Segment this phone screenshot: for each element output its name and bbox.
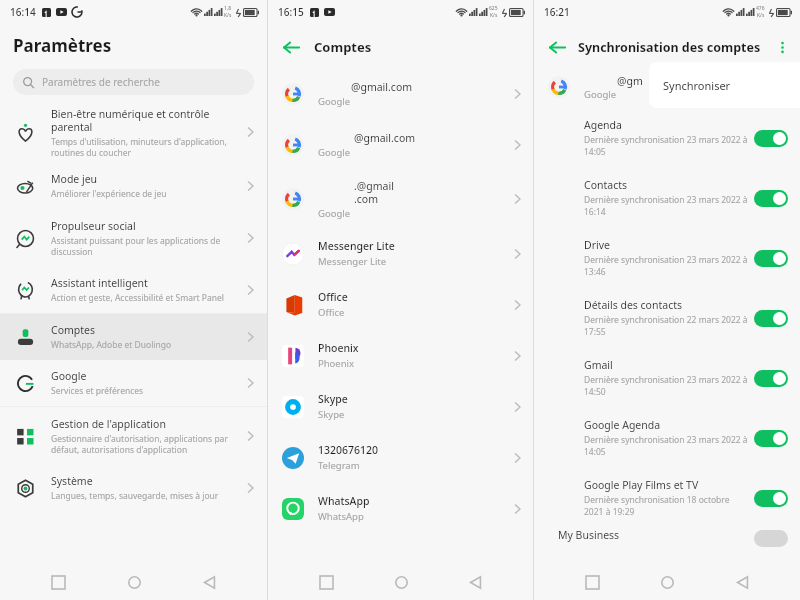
button[interactable]: Home	[650, 565, 684, 599]
staticText: Google Play Films et TV	[584, 478, 699, 492]
staticText: .@gmail .com	[354, 179, 394, 206]
button[interactable]: Back	[542, 32, 572, 62]
button[interactable]: 1320676120	[268, 432, 533, 483]
button[interactable]: Comptes	[0, 314, 267, 360]
staticText: WhatsApp	[318, 494, 370, 508]
button[interactable]: Home	[384, 565, 418, 599]
staticText: Services et préférences	[51, 385, 144, 397]
staticText: 16:14	[584, 206, 606, 218]
staticText: 17:55	[584, 326, 606, 338]
staticText: K/s	[490, 12, 498, 19]
staticText: 1320676120	[318, 443, 379, 457]
staticText: Agenda	[584, 118, 622, 132]
staticText: 16:21	[544, 5, 570, 19]
staticText: Skype	[318, 408, 345, 421]
button[interactable]: Back	[276, 32, 306, 62]
button[interactable]: Bien-être numérique et contrôle parental	[0, 101, 267, 163]
button[interactable]: .@gmail .com	[268, 170, 533, 228]
button[interactable]: Back	[725, 565, 759, 599]
button[interactable]: Système	[0, 465, 267, 511]
staticText: K/s	[224, 12, 232, 19]
button[interactable]: Messenger Lite	[268, 228, 533, 279]
staticText: 14:05	[584, 146, 606, 158]
button[interactable]: Gestion de l'application	[0, 407, 267, 465]
button[interactable]: @gmail.com	[268, 119, 533, 170]
button[interactable]: Paramètres de recherche	[13, 69, 254, 95]
button[interactable]: Back	[458, 565, 492, 599]
staticText: Assistant puissant pour les applications…	[51, 235, 221, 257]
staticText: Bien-être numérique et contrôle parental	[51, 107, 210, 134]
button[interactable]: Recents	[41, 565, 75, 599]
staticText: Synchroniser	[663, 78, 731, 93]
button[interactable]: Google Agenda	[534, 408, 800, 468]
staticText: Comptes	[51, 323, 96, 337]
button[interactable]	[754, 190, 788, 207]
staticText: Dernière synchronisation 22 mars 2022 à	[584, 314, 748, 326]
staticText: Assistant intelligent	[51, 276, 148, 290]
button[interactable]: Détails des contacts	[534, 288, 800, 348]
button[interactable]	[754, 310, 788, 327]
staticText: 16:15	[278, 5, 304, 19]
button[interactable]: Synchroniser	[649, 62, 800, 108]
staticText: Système	[51, 474, 93, 488]
button[interactable]	[754, 490, 788, 507]
button[interactable]	[754, 250, 788, 267]
button[interactable]: More options	[770, 35, 794, 59]
button[interactable]: Assistant intelligent	[0, 267, 267, 313]
button[interactable]: Mode jeu	[0, 163, 267, 209]
staticText: @gm	[617, 74, 643, 88]
button[interactable]: Recents	[309, 565, 343, 599]
staticText: WhatsApp, Adobe et Duolingo	[51, 339, 172, 351]
staticText: Améliorer l'expérience de jeu	[51, 188, 167, 200]
staticText: Gmail	[584, 358, 613, 372]
staticText: Comptes	[314, 38, 372, 56]
button[interactable]	[754, 430, 788, 447]
button[interactable]: Contacts	[534, 168, 800, 228]
button[interactable]: Skype	[268, 381, 533, 432]
staticText: Skype	[318, 392, 348, 406]
staticText: Gestionnaire d'autorisation, application…	[51, 433, 228, 455]
staticText: WhatsApp	[318, 510, 364, 523]
staticText: 14:05	[584, 446, 606, 458]
staticText: 13:46	[584, 266, 606, 278]
staticText: 2021 à 19:29	[584, 506, 635, 518]
staticText: 14:50	[584, 386, 606, 398]
staticText: Mode jeu	[51, 172, 98, 186]
button[interactable]: Drive	[534, 228, 800, 288]
staticText: @gmail.com	[354, 131, 416, 145]
staticText: 16:14	[10, 5, 36, 19]
staticText: Office	[318, 290, 348, 304]
staticText: Temps d'utilisation, minuteurs d'applica…	[51, 136, 227, 158]
staticText: Paramètres	[13, 34, 112, 57]
staticText: Office	[318, 306, 345, 319]
staticText: 476	[756, 5, 765, 12]
button[interactable]: WhatsApp	[268, 483, 533, 534]
staticText: Telegram	[318, 459, 360, 472]
staticText: Langues, temps, sauvegarde, mises à jour	[51, 490, 219, 502]
button[interactable]: Google	[0, 360, 267, 406]
button[interactable]: Gmail	[534, 348, 800, 408]
staticText: Google	[318, 95, 351, 108]
button[interactable]: Office	[268, 279, 533, 330]
staticText: 625	[489, 5, 498, 12]
button[interactable]: Phoenix	[268, 330, 533, 381]
button[interactable]: Back	[192, 565, 226, 599]
button[interactable]: Recents	[575, 565, 609, 599]
button[interactable]	[754, 130, 788, 147]
button[interactable]: Google Play Films et TV	[534, 468, 800, 528]
button[interactable]	[754, 370, 788, 387]
staticText: Google	[51, 369, 87, 383]
staticText: K/s	[757, 12, 765, 19]
button[interactable]: Propulseur social	[0, 209, 267, 267]
button[interactable]: @gmail.com	[268, 68, 533, 119]
staticText: Dernière synchronisation 23 mars 2022 à	[584, 134, 748, 146]
button[interactable]: Home	[117, 565, 151, 599]
staticText: Action et geste, Accessibilité et Smart …	[51, 292, 224, 304]
staticText: Dernière synchronisation 23 mars 2022 à	[584, 374, 748, 386]
button[interactable]: Agenda	[534, 108, 800, 168]
staticText: Dernière synchronisation 18 octobre	[584, 494, 730, 506]
staticText: Drive	[584, 238, 610, 252]
button[interactable]: @gm	[534, 66, 800, 108]
staticText: Détails des contacts	[584, 298, 683, 312]
button[interactable]: My Business	[534, 528, 800, 550]
